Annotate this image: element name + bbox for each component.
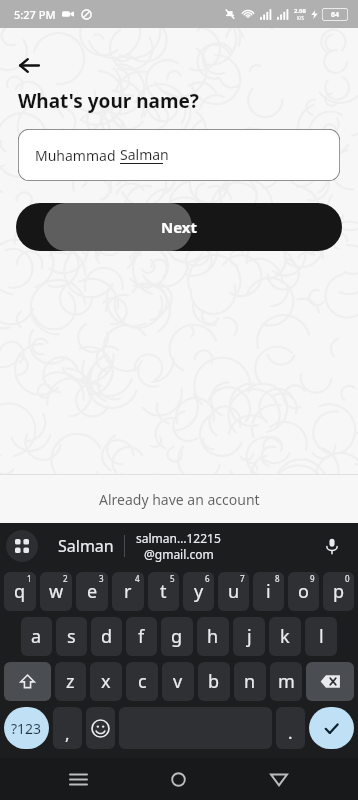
button[interactable]: w <box>40 572 72 611</box>
button[interactable]: z <box>55 662 86 701</box>
button[interactable]: g <box>161 617 193 656</box>
staticText: a <box>31 624 42 649</box>
staticText: 4 <box>135 573 140 584</box>
button[interactable]: Recents <box>56 758 100 800</box>
staticText: 7 <box>240 573 245 584</box>
staticText: o <box>298 579 309 604</box>
button[interactable]: Back <box>257 758 301 800</box>
staticText: t <box>160 579 167 604</box>
button[interactable]: h <box>197 617 229 656</box>
staticText: x <box>101 669 111 694</box>
button[interactable]: e <box>76 572 108 611</box>
staticText: 8 <box>275 573 280 584</box>
button[interactable]: salman…12215 <box>136 530 221 562</box>
button[interactable]: l <box>305 617 337 656</box>
staticText: g <box>171 624 183 649</box>
staticText: b <box>208 669 220 694</box>
button[interactable]: m <box>270 662 302 701</box>
staticText: l <box>319 624 324 649</box>
staticText: 64 <box>331 10 340 20</box>
staticText: 3 <box>99 573 104 584</box>
staticText: 5:27 PM <box>14 7 56 22</box>
button[interactable]: Back <box>12 48 46 82</box>
staticText: v <box>173 669 183 694</box>
button[interactable]: Shift <box>4 662 51 701</box>
button[interactable]: Salman <box>58 535 114 557</box>
button[interactable]: Keyboard options <box>6 530 38 562</box>
button[interactable]: p <box>323 572 354 611</box>
staticText: h <box>207 624 219 649</box>
staticText: w <box>49 579 64 604</box>
button[interactable]: Muhammad <box>18 129 340 181</box>
button[interactable]: f <box>126 617 157 656</box>
staticText: Salman <box>120 145 169 164</box>
staticText: 2 <box>63 573 68 584</box>
staticText: q <box>14 579 26 604</box>
staticText: 0 <box>345 573 350 584</box>
staticText: k <box>280 624 290 649</box>
button[interactable]: a <box>21 617 52 656</box>
staticText: Already have an account <box>99 490 260 509</box>
staticText: r <box>124 579 132 604</box>
staticText: e <box>87 579 98 604</box>
button[interactable]: j <box>233 617 265 656</box>
staticText: 5 <box>170 573 175 584</box>
button[interactable]: Already have an account <box>0 475 358 523</box>
staticText: K/S <box>297 15 304 21</box>
staticText: z <box>66 669 75 694</box>
staticText: ?123 <box>11 719 42 738</box>
button[interactable]: Backspace <box>306 662 354 701</box>
button[interactable]: c <box>126 662 158 701</box>
button[interactable]: Enter <box>309 707 354 749</box>
button[interactable]: s <box>56 617 87 656</box>
button[interactable]: k <box>269 617 301 656</box>
button[interactable]: n <box>234 662 266 701</box>
button[interactable]: v <box>162 662 194 701</box>
staticText: Muhammad <box>35 146 120 165</box>
staticText: 2.08 <box>294 7 306 15</box>
staticText: @gmail.com <box>144 546 214 562</box>
button[interactable]: r <box>112 572 144 611</box>
staticText: p <box>333 579 345 604</box>
button[interactable]: t <box>148 572 179 611</box>
staticText: . <box>288 721 293 744</box>
staticText: u <box>228 579 240 604</box>
staticText: 1 <box>27 573 32 584</box>
button[interactable]: b <box>198 662 230 701</box>
button[interactable]: ?123 <box>4 707 49 749</box>
staticText: n <box>244 669 256 694</box>
staticText: 6 <box>205 573 210 584</box>
staticText: , <box>65 722 70 745</box>
button[interactable]: Home <box>156 758 200 800</box>
staticText: y <box>194 579 204 604</box>
button[interactable]: i <box>253 572 284 611</box>
button[interactable]: d <box>91 617 122 656</box>
staticText: m <box>278 669 295 694</box>
staticText: i <box>266 579 271 604</box>
button[interactable]: , <box>53 707 82 749</box>
button[interactable]: Next <box>16 203 342 251</box>
staticText: 9 <box>310 573 315 584</box>
staticText: s <box>67 624 76 649</box>
button[interactable]: o <box>288 572 319 611</box>
button[interactable]: Voice input <box>318 532 346 560</box>
button[interactable]: Emoji <box>86 707 115 749</box>
button[interactable]: x <box>90 662 122 701</box>
button[interactable]: . <box>276 707 305 749</box>
staticText: salman…12215 <box>136 530 221 546</box>
staticText: What's your name? <box>18 88 199 114</box>
button[interactable]: q <box>4 572 36 611</box>
staticText: d <box>101 624 113 649</box>
button[interactable]: y <box>183 572 214 611</box>
staticText: f <box>138 624 145 649</box>
button[interactable]: u <box>218 572 249 611</box>
staticText: c <box>138 669 147 694</box>
staticText: Next <box>161 217 198 237</box>
staticText: j <box>247 624 252 649</box>
